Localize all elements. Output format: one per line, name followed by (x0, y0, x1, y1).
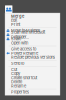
staticText: Scan with Microsoft Defender... (11, 30, 45, 39)
button[interactable]: Move to Mailbox (5, 28, 60, 33)
staticText: Edit (11, 18, 17, 23)
staticText: Send to (11, 61, 24, 66)
staticText: Share (11, 36, 21, 41)
button[interactable]: Send to (5, 61, 60, 65)
staticText: Delete (11, 79, 22, 84)
button[interactable]: Rename (5, 84, 60, 88)
button[interactable]: Create shortcut (5, 76, 60, 80)
button[interactable]: Share (5, 37, 60, 41)
button[interactable]: Merge (5, 14, 60, 18)
staticText: Give access to (11, 47, 36, 51)
staticText: Open with (11, 41, 28, 45)
staticText: PowerRename (11, 51, 38, 56)
staticText: Restore previous versions (11, 55, 55, 60)
staticText: Merge (11, 14, 24, 19)
button[interactable]: Properties (5, 90, 60, 94)
button[interactable]: Copy (5, 71, 60, 76)
button[interactable]: Cut (5, 67, 60, 71)
button[interactable]: Open with (5, 41, 60, 45)
button[interactable]: Delete (5, 80, 60, 84)
staticText: Properties (11, 90, 29, 94)
button[interactable]: Scan with Microsoft Defender... (5, 33, 60, 37)
button[interactable]: PowerRename (5, 51, 60, 55)
staticText: Copy (11, 71, 20, 76)
staticText: Create shortcut (11, 75, 37, 80)
staticText: Cut (11, 67, 17, 72)
button[interactable]: Print (5, 22, 60, 27)
staticText: Rename (11, 84, 26, 88)
button[interactable]: Restore previous versions (5, 55, 60, 59)
button[interactable]: Give access to (5, 47, 60, 51)
button[interactable]: Edit (5, 18, 60, 22)
staticText: Print (11, 22, 20, 27)
staticText: Move to Mailbox (11, 28, 40, 33)
